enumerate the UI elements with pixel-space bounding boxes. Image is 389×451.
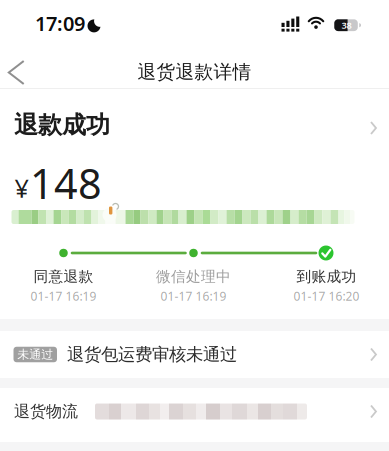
staticText: 未通过 <box>17 347 53 362</box>
staticText: 01-17 16:20 <box>293 288 359 304</box>
button[interactable]: 退款成功 <box>0 103 389 147</box>
staticText: 01-17 16:19 <box>160 288 226 304</box>
staticText: 退货物流 <box>14 402 78 421</box>
staticText: 38 <box>341 19 351 31</box>
staticText: ¥ <box>14 171 28 205</box>
button[interactable]: 退货物流 <box>0 384 389 438</box>
staticText: 148 <box>30 156 102 210</box>
staticText: 17:09 <box>35 10 85 37</box>
staticText: 到账成功 <box>296 267 356 285</box>
staticText: 退货退款详情 <box>137 60 251 83</box>
staticText: 01-17 16:19 <box>30 288 96 304</box>
staticText: 退款成功 <box>14 110 110 140</box>
staticText: 退货包运费审核未通过 <box>67 344 237 365</box>
staticText: 微信处理中 <box>156 267 231 285</box>
button[interactable]: Back <box>2 58 32 87</box>
button[interactable]: 未通过 <box>0 331 389 378</box>
staticText: 同意退款 <box>33 267 93 285</box>
